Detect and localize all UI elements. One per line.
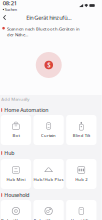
staticText: Robot Vacuum	[34, 217, 64, 220]
staticText: Hub	[4, 149, 14, 157]
staticText: Bot	[12, 132, 19, 138]
staticText: Humidifier	[71, 217, 92, 220]
button[interactable]: Bot	[1, 115, 31, 145]
button[interactable]: Robot Vacuum	[33, 200, 64, 220]
staticText: Curtain	[41, 132, 56, 138]
button[interactable]: Back	[0, 13, 9, 22]
button[interactable]: Humidifier	[66, 200, 96, 220]
button[interactable]: Hub/Hub Plus	[33, 159, 64, 189]
staticText: S	[47, 61, 50, 69]
staticText: Home Automation	[4, 106, 48, 114]
staticText: Suchen	[5, 7, 17, 12]
staticText: Blind Tilt	[73, 132, 90, 138]
staticText: Ein Gerät hinzufü…	[26, 14, 71, 21]
staticText: 08:21	[3, 0, 17, 7]
staticText: Scannen nach Bluetooth-Geräten in der Nä…	[7, 26, 80, 37]
button[interactable]: Hub Mini	[1, 159, 31, 189]
staticText: Hub 2	[75, 176, 87, 182]
button[interactable]: Blind Tilt	[66, 115, 96, 145]
staticText: Hub Mini	[6, 176, 25, 182]
staticText: Household	[4, 191, 29, 199]
staticText: Add Manually	[1, 96, 29, 102]
button[interactable]: Curtain	[33, 115, 64, 145]
staticText: Hub/Hub Plus	[34, 176, 64, 182]
button[interactable]: Robot Vacuum	[1, 200, 31, 220]
staticText: Robot Vacuum	[1, 217, 31, 220]
button[interactable]: Hub 2	[66, 159, 96, 189]
